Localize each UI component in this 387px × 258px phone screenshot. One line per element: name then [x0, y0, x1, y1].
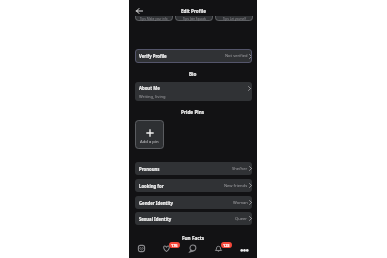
staticText: Gender Identity: [139, 200, 174, 206]
button[interactable]: Messages: [179, 240, 205, 258]
staticText: Not verified: [225, 53, 248, 59]
button[interactable]: Sexual Identity: [135, 212, 252, 225]
staticText: Writing, living: [139, 94, 166, 100]
button[interactable]: Back: [131, 3, 147, 19]
staticText: Tips: Join Squads: [183, 17, 206, 21]
staticText: New friends: [224, 183, 248, 189]
staticText: Fun Facts: [182, 235, 205, 241]
button[interactable]: Add a pin: [135, 120, 164, 149]
staticText: Tips: Make your info: [140, 17, 168, 21]
button[interactable]: Tips: Join Squads: [175, 16, 213, 21]
staticText: She/her: [232, 166, 248, 172]
staticText: Tips: Let yourself: [223, 17, 246, 21]
button[interactable]: Looking for: [135, 179, 252, 192]
staticText: 123: [223, 243, 230, 248]
button[interactable]: About Me: [135, 82, 252, 101]
staticText: About Me: [139, 85, 160, 91]
staticText: Verify Profile: [139, 53, 167, 59]
button[interactable]: Notifications: [205, 240, 231, 258]
staticText: 176: [171, 243, 178, 248]
button[interactable]: Gender Identity: [135, 196, 252, 209]
staticText: Looking for: [139, 183, 164, 189]
button[interactable]: Favorites: [154, 240, 179, 258]
staticText: Pride Pins: [181, 109, 205, 115]
button[interactable]: Tips: Make your info: [135, 16, 173, 21]
staticText: Pronouns: [139, 166, 160, 172]
button[interactable]: Browse: [129, 240, 154, 258]
button[interactable]: Verify Profile: [135, 49, 252, 63]
staticText: Queer: [235, 216, 248, 222]
staticText: Woman: [233, 200, 248, 206]
staticText: Bio: [189, 71, 197, 77]
button[interactable]: Tips: Let yourself: [215, 16, 253, 21]
button[interactable]: Pronouns: [135, 162, 252, 175]
staticText: Add a pin: [140, 139, 159, 145]
staticText: Sexual Identity: [139, 216, 172, 222]
staticText: Edit Profile: [181, 8, 206, 14]
button[interactable]: More: [231, 240, 257, 258]
